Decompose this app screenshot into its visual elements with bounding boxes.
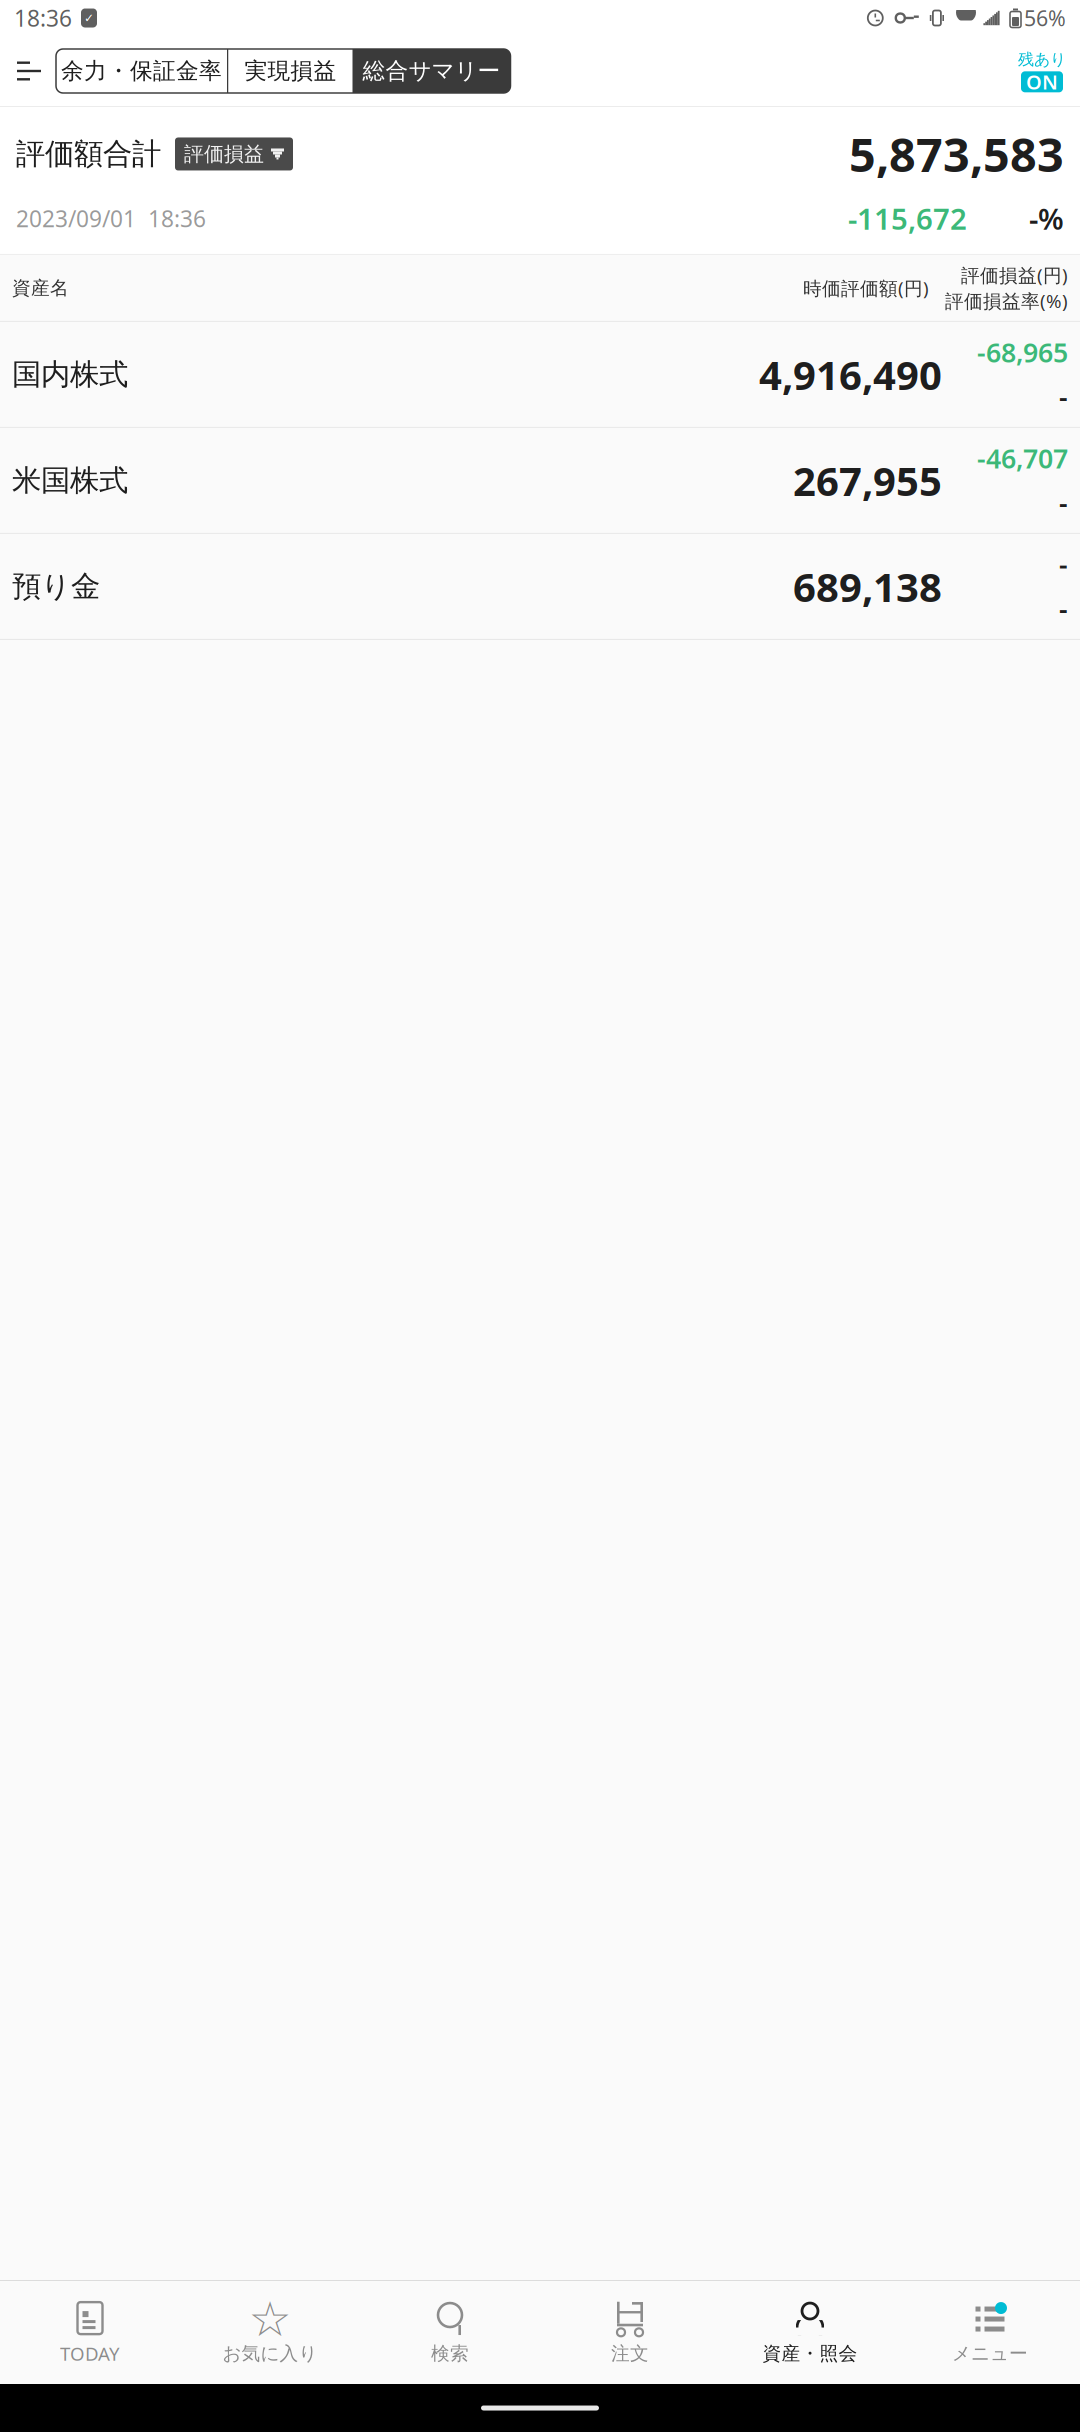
staticText: -% [1029,199,1064,238]
staticText: メニュー [952,2342,1028,2365]
staticText: 実現損益 [244,57,336,85]
staticText: - [1059,485,1068,520]
button[interactable]: 実現損益 [228,49,352,93]
staticText: 資産名 [12,276,69,299]
staticText: 評価額合計 [16,136,161,172]
staticText: 4,916,490 [759,348,942,401]
button[interactable]: メニュー [900,2281,1080,2384]
button[interactable]: 評価損益 [175,137,293,170]
staticText: 267,955 [793,454,942,507]
staticText: - [1059,546,1068,582]
staticText: -46,707 [977,440,1068,476]
staticText: - [1059,591,1068,626]
button[interactable]: 検索 [360,2281,540,2384]
staticText: 5,873,583 [849,123,1064,185]
staticText: 預り金 [12,568,100,604]
button[interactable]: 国内株式 [0,322,1080,427]
staticText: 689,138 [793,560,942,613]
staticText: 時価評価額(円) [803,275,929,300]
button[interactable]: 預り金 [0,534,1080,639]
staticText: ☆ [248,2292,291,2346]
staticText: 18:36 [14,3,72,33]
staticText: ✓ [84,11,94,25]
staticText: 注文 [611,2342,649,2365]
staticText: 残あり [1018,50,1066,69]
staticText: お気に入り [222,2342,317,2365]
staticText: 国内株式 [12,356,128,392]
button[interactable]: 米国株式 [0,428,1080,533]
staticText: 2023/09/01 18:36 [16,203,206,233]
staticText: 56% [1024,4,1066,32]
button[interactable]: 戻る [6,48,52,94]
staticText: - [1059,379,1068,414]
staticText: -115,672 [848,199,967,238]
staticText: 総合サマリー [362,57,500,85]
staticText: 評価損益率(%) [945,288,1068,313]
button[interactable]: 余力・保証金率 [56,49,227,93]
staticText: 評価損益(円) [961,263,1068,287]
staticText: 検索 [431,2342,469,2365]
button[interactable]: 注文 [540,2281,720,2384]
button[interactable]: 残あり [1018,50,1066,92]
button[interactable]: TODAY [0,2281,180,2384]
button[interactable]: ☆ [180,2281,360,2384]
staticText: 資産・照会 [762,2342,857,2365]
staticText: ON [1026,68,1058,95]
button[interactable]: 総合サマリー [352,49,510,93]
button[interactable]: 資産・照会 [720,2281,900,2384]
staticText: -68,965 [977,334,1068,370]
staticText: 余力・保証金率 [61,57,222,85]
staticText: 評価損益 [184,142,264,166]
staticText: 米国株式 [12,462,128,498]
staticText: TODAY [60,2341,120,2366]
